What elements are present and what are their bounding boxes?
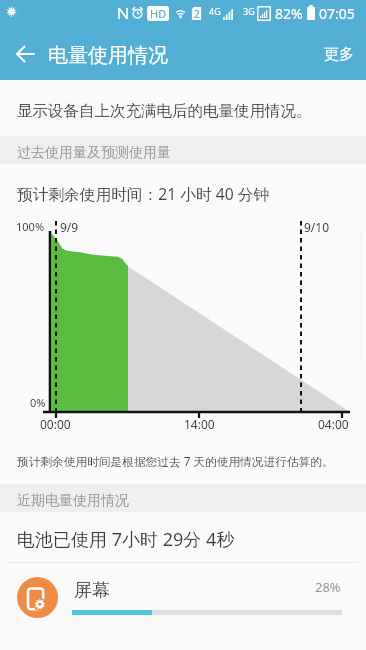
staticText: 9/9 xyxy=(60,219,79,235)
staticText: 100% xyxy=(16,219,45,234)
staticText: 3G xyxy=(243,5,255,17)
button[interactable]: 屏幕 xyxy=(0,563,366,635)
staticText: HD xyxy=(150,6,167,21)
staticText: 屏幕 xyxy=(74,579,110,602)
staticText: 14:00 xyxy=(184,416,215,432)
staticText: 4G xyxy=(209,5,221,17)
staticText: 预计剩余使用时间：21 小时 40 分钟 xyxy=(17,183,270,204)
button[interactable]: Back xyxy=(9,38,41,70)
staticText: 07:05 xyxy=(319,4,355,23)
staticText: 电量使用情况 xyxy=(48,43,168,68)
staticText: 82% xyxy=(275,4,303,23)
staticText: 预计剩余使用时间是根据您过去 7 天的使用情况进行估算的。 xyxy=(17,453,334,469)
staticText: 9/10 xyxy=(304,219,330,235)
staticText: 0% xyxy=(30,395,46,410)
staticText: 更多 xyxy=(324,45,354,64)
staticText: 04:00 xyxy=(318,416,349,432)
staticText: 28% xyxy=(315,578,341,596)
staticText: 电池已使用 7小时 29分 4秒 xyxy=(17,527,235,552)
staticText: 近期电量使用情况 xyxy=(17,492,129,510)
staticText: 00:00 xyxy=(40,416,71,432)
staticText: 2 xyxy=(194,7,200,21)
staticText: 过去使用量及预测使用量 xyxy=(17,144,171,162)
staticText: 显示设备自上次充满电后的电量使用情况。 xyxy=(17,101,312,121)
button[interactable]: 更多 xyxy=(312,32,366,77)
